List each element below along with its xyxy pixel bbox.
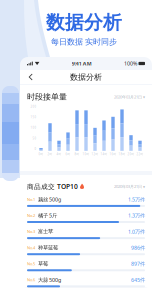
staticText: No.2 xyxy=(27,213,35,218)
staticText: No.1 xyxy=(27,197,35,202)
staticText: 100% xyxy=(124,60,137,67)
staticText: 20时 xyxy=(127,152,134,156)
button[interactable]: No.5 xyxy=(27,260,145,271)
staticText: 草莓 xyxy=(38,260,48,267)
staticText: 200 xyxy=(30,105,36,108)
button[interactable]: 2020年03月21日 ▾ xyxy=(114,184,145,189)
staticText: 数据分析 xyxy=(46,11,122,34)
staticText: 时段接单量 xyxy=(27,92,67,102)
staticText: 1.3万件 xyxy=(128,212,145,219)
button[interactable]: No.3 xyxy=(27,228,145,239)
staticText: 0时 xyxy=(38,152,43,156)
staticText: 16时 xyxy=(109,152,116,156)
button[interactable]: 2020年03月21日 ▾ xyxy=(114,94,145,100)
staticText: 10时 xyxy=(82,152,89,156)
staticText: 645件 xyxy=(131,276,145,283)
staticText: 8时 xyxy=(74,152,79,156)
staticText: 富士苹 xyxy=(38,228,53,235)
staticText: 4时 xyxy=(56,152,61,156)
staticText: No.3 xyxy=(27,229,35,234)
staticText: 2020年03月21日 ▾ xyxy=(114,94,145,100)
staticText: 1.0万件 xyxy=(128,228,145,235)
staticText: 12时 xyxy=(91,152,98,156)
staticText: 22时 xyxy=(136,152,143,156)
staticText: 橘子 5斤 xyxy=(38,212,57,219)
staticText: No.4 xyxy=(27,245,35,250)
button[interactable]: No.4 xyxy=(27,244,145,255)
staticText: 9:41 AM xyxy=(72,60,92,67)
button[interactable]: No.2 xyxy=(27,212,145,223)
staticText: No.5 xyxy=(27,261,35,266)
button[interactable]: 返回 xyxy=(25,70,37,84)
staticText: No.6 xyxy=(27,277,35,282)
staticText: 种草蓝莓 xyxy=(38,244,58,251)
staticText: 0 xyxy=(34,147,36,151)
staticText: 897件 xyxy=(131,260,145,267)
staticText: 6时 xyxy=(65,152,70,156)
staticText: 数据分析 xyxy=(70,72,102,82)
staticText: 100 xyxy=(30,126,36,130)
staticText: 2时 xyxy=(47,152,52,156)
staticText: 1.5万件 xyxy=(128,196,145,203)
staticText: 每日数据 实时同步 xyxy=(51,37,117,47)
staticText: 大蒜 500g xyxy=(38,276,61,283)
staticText: 50 xyxy=(32,137,36,140)
button[interactable]: No.1 xyxy=(27,196,145,207)
button[interactable]: No.6 xyxy=(27,276,145,287)
staticText: 18时 xyxy=(118,152,125,156)
staticText: 14时 xyxy=(100,152,107,156)
staticText: 藕丝 500g xyxy=(38,196,61,203)
staticText: 2020年03月21日 ▾ xyxy=(114,184,145,189)
staticText: 150 xyxy=(30,115,36,119)
staticText: 986件 xyxy=(131,244,145,251)
staticText: 商品成交 TOP10 xyxy=(27,182,78,191)
